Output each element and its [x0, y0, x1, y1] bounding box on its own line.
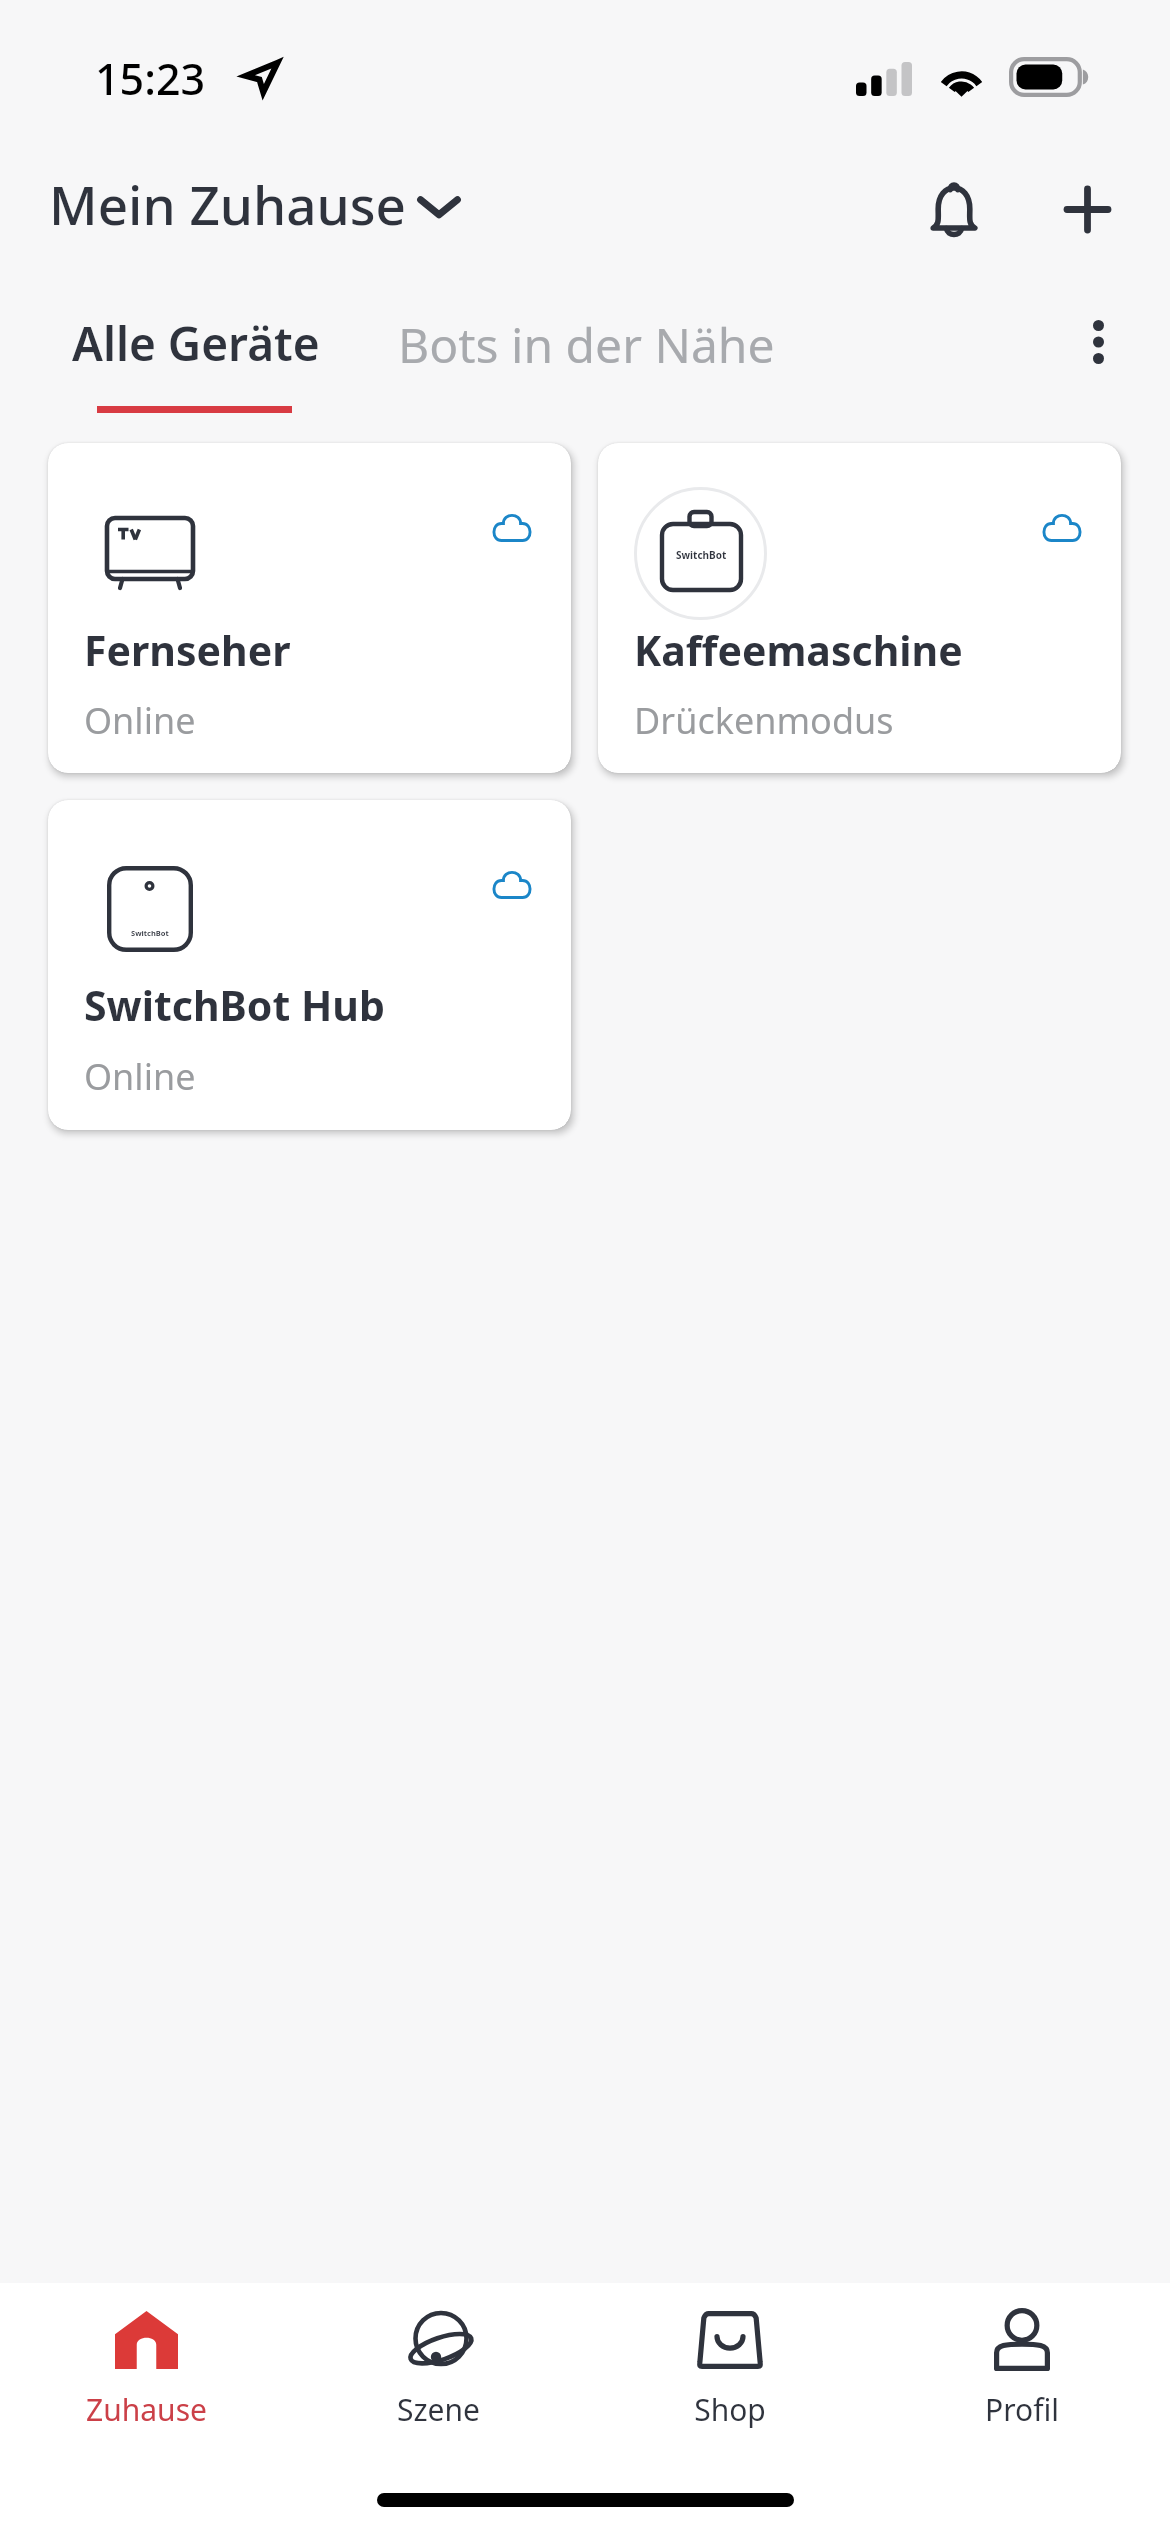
- button[interactable]: SwitchBot: [48, 800, 571, 1130]
- button[interactable]: Szene: [292, 2283, 584, 2453]
- staticText: Profil: [985, 2389, 1059, 2430]
- staticText: Szene: [397, 2389, 480, 2430]
- button[interactable]: Add device: [1023, 145, 1151, 273]
- button[interactable]: Shop: [584, 2283, 876, 2453]
- button[interactable]: More options: [1038, 282, 1158, 402]
- staticText: Online: [84, 1052, 196, 1101]
- staticText: Zuhause: [86, 2389, 207, 2430]
- staticText: Fernseher: [84, 622, 291, 678]
- button[interactable]: Bots in der Nähe: [378, 302, 795, 387]
- staticText: Bots in der Nähe: [398, 312, 775, 377]
- button[interactable]: Fernseher: [48, 443, 571, 773]
- button[interactable]: Zuhause: [0, 2283, 292, 2453]
- staticText: SwitchBot: [131, 928, 169, 938]
- button[interactable]: SwitchBot: [598, 443, 1121, 773]
- staticText: Mein Zuhause: [49, 168, 407, 240]
- staticText: Kaffeemaschine: [634, 622, 963, 678]
- staticText: 15:23: [95, 49, 206, 108]
- staticText: SwitchBot Hub: [84, 977, 385, 1033]
- staticText: Shop: [694, 2389, 766, 2430]
- button[interactable]: Alle Geräte: [52, 302, 340, 385]
- staticText: SwitchBot: [676, 548, 727, 562]
- button[interactable]: Notifications: [890, 145, 1018, 273]
- button[interactable]: Mein Zuhause: [35, 162, 469, 246]
- staticText: Alle Geräte: [72, 312, 320, 375]
- staticText: Drückenmodus: [634, 696, 894, 745]
- staticText: Online: [84, 696, 196, 745]
- button[interactable]: Profil: [876, 2283, 1168, 2453]
